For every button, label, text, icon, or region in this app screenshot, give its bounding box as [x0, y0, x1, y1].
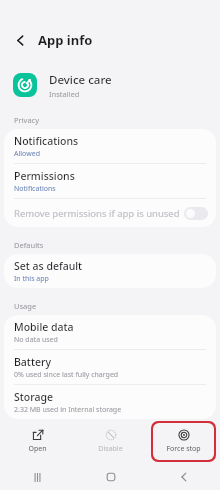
staticText: App info [38, 31, 93, 49]
staticText: In this app [14, 274, 49, 284]
staticText: 2.32 MB used in Internal storage [14, 405, 122, 415]
staticText: Defaults [14, 240, 44, 250]
staticText: Allowed [14, 149, 40, 159]
button[interactable]: Force stop [153, 423, 214, 460]
button[interactable]: Mobile data [4, 315, 216, 349]
staticText: Disable [98, 444, 123, 454]
button[interactable]: Notifications [4, 129, 216, 163]
staticText: 0% used since last fully charged [14, 370, 119, 380]
button[interactable]: Permissions [4, 164, 216, 198]
staticText: Mobile data [14, 320, 74, 334]
staticText: Remove permissions if app is unused [14, 207, 180, 220]
staticText: Permissions [14, 169, 75, 183]
staticText: Device care [49, 72, 112, 88]
button[interactable]: Remove permissions if app is unused [4, 199, 216, 227]
staticText: Notifications [14, 134, 79, 148]
staticText: Installed [49, 89, 80, 99]
button[interactable]: Disable [78, 421, 143, 462]
staticText: Notifications [14, 184, 56, 194]
staticText: Set as default [14, 259, 83, 273]
button[interactable]: Storage [4, 385, 216, 419]
button[interactable]: Back [147, 464, 220, 490]
button[interactable]: Back [11, 31, 29, 49]
staticText: Privacy [14, 115, 40, 125]
staticText: No data used [14, 335, 58, 345]
button[interactable]: Set as default [4, 254, 216, 288]
button[interactable]: Battery [4, 350, 216, 384]
other: Force stop [178, 429, 190, 441]
other: Disable [105, 429, 117, 441]
staticText: Storage [14, 390, 53, 404]
other: Open [32, 429, 44, 441]
button[interactable]: Device care [0, 66, 220, 104]
staticText: Open [28, 444, 47, 454]
staticText: Battery [14, 355, 51, 369]
button[interactable]: Recent apps [0, 464, 74, 490]
staticText: Force stop [166, 444, 201, 454]
staticText: Usage [14, 301, 37, 311]
button[interactable]: Open [4, 421, 70, 462]
button[interactable]: Home [74, 464, 147, 490]
